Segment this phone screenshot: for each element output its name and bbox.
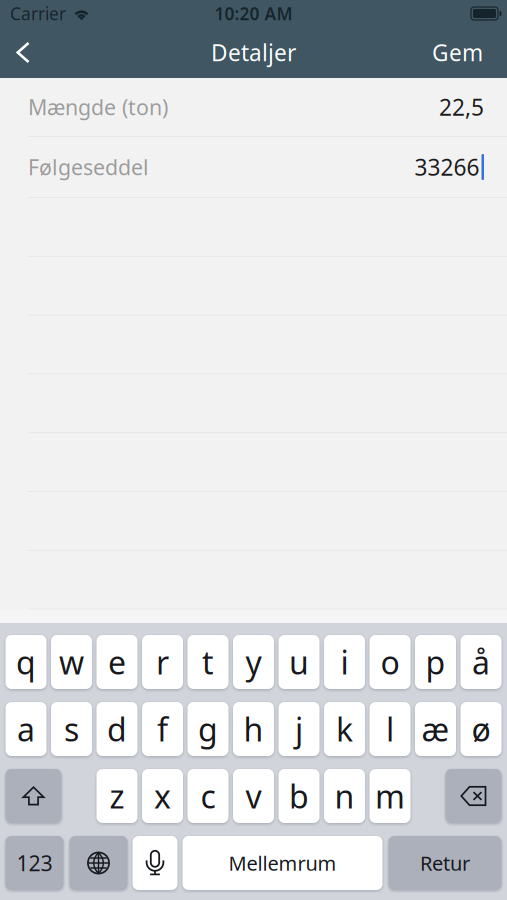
staticText: æ xyxy=(421,708,449,750)
staticText: Følgeseddel xyxy=(28,153,149,181)
button[interactable]: d xyxy=(96,702,137,756)
button[interactable]: æ xyxy=(415,702,456,756)
staticText: d xyxy=(107,708,127,750)
staticText: x xyxy=(154,775,171,817)
staticText: Mængde (ton) xyxy=(28,93,168,121)
button[interactable]: b xyxy=(278,769,319,823)
staticText: 10:20 AM xyxy=(214,2,292,25)
button[interactable]: Delete xyxy=(445,769,501,823)
staticText: h xyxy=(243,708,263,750)
button[interactable]: r xyxy=(142,635,183,689)
staticText: o xyxy=(380,641,399,683)
button[interactable]: e xyxy=(96,635,137,689)
button[interactable]: Gem xyxy=(410,27,507,78)
button[interactable]: p xyxy=(415,635,456,689)
button[interactable]: q xyxy=(5,635,46,689)
staticText: r xyxy=(156,641,169,683)
staticText: å xyxy=(472,641,490,683)
staticText: v xyxy=(245,775,261,817)
button[interactable]: Shift xyxy=(5,769,61,823)
staticText: i xyxy=(340,641,348,683)
staticText: a xyxy=(17,708,35,750)
staticText: 33266 xyxy=(414,152,479,182)
button[interactable]: g xyxy=(187,702,228,756)
button[interactable]: a xyxy=(5,702,46,756)
staticText: Mellemrum xyxy=(228,850,336,876)
staticText: ø xyxy=(471,708,490,750)
staticText: j xyxy=(295,708,303,750)
button[interactable]: i xyxy=(324,635,365,689)
button[interactable]: z xyxy=(96,769,137,823)
button[interactable]: j xyxy=(278,702,319,756)
staticText: t xyxy=(202,641,214,683)
staticText: q xyxy=(16,641,36,683)
staticText: l xyxy=(386,708,394,750)
staticText: Gem xyxy=(432,37,483,67)
button[interactable]: ø xyxy=(460,702,501,756)
button[interactable]: v xyxy=(233,769,274,823)
staticText: u xyxy=(289,641,309,683)
button[interactable]: l xyxy=(369,702,410,756)
button[interactable]: m xyxy=(369,769,410,823)
staticText: Carrier xyxy=(10,2,66,25)
staticText: b xyxy=(289,775,309,817)
button[interactable]: n xyxy=(324,769,365,823)
staticText: g xyxy=(198,708,218,750)
button[interactable]: t xyxy=(187,635,228,689)
button[interactable]: Dictate xyxy=(132,836,177,890)
staticText: m xyxy=(375,775,405,817)
staticText: f xyxy=(157,708,168,750)
button[interactable]: f xyxy=(142,702,183,756)
button[interactable]: Mellemrum xyxy=(182,836,382,890)
staticText: Retur xyxy=(420,850,470,876)
button[interactable]: y xyxy=(233,635,274,689)
button[interactable]: Følgeseddel xyxy=(0,137,507,197)
staticText: n xyxy=(334,775,354,817)
staticText: w xyxy=(59,641,84,683)
button[interactable]: c xyxy=(187,769,228,823)
button[interactable]: Next keyboard xyxy=(69,836,127,890)
button[interactable]: Mængde (ton) xyxy=(0,78,507,136)
button[interactable]: o xyxy=(369,635,410,689)
button[interactable]: å xyxy=(460,635,501,689)
button[interactable]: u xyxy=(278,635,319,689)
staticText: Detaljer xyxy=(211,37,296,67)
staticText: s xyxy=(64,708,79,750)
staticText: k xyxy=(336,708,353,750)
button[interactable]: 123 xyxy=(5,836,63,890)
staticText: z xyxy=(109,775,124,817)
button[interactable]: h xyxy=(233,702,274,756)
button[interactable]: x xyxy=(142,769,183,823)
button[interactable]: s xyxy=(51,702,92,756)
button[interactable]: Back xyxy=(0,27,52,78)
staticText: 123 xyxy=(16,849,52,877)
staticText: 22,5 xyxy=(439,92,484,122)
button[interactable]: Retur xyxy=(388,836,501,890)
staticText: p xyxy=(425,641,445,683)
button[interactable]: k xyxy=(324,702,365,756)
staticText: c xyxy=(200,775,215,817)
staticText: e xyxy=(108,641,126,683)
button[interactable]: w xyxy=(51,635,92,689)
staticText: y xyxy=(245,641,261,683)
